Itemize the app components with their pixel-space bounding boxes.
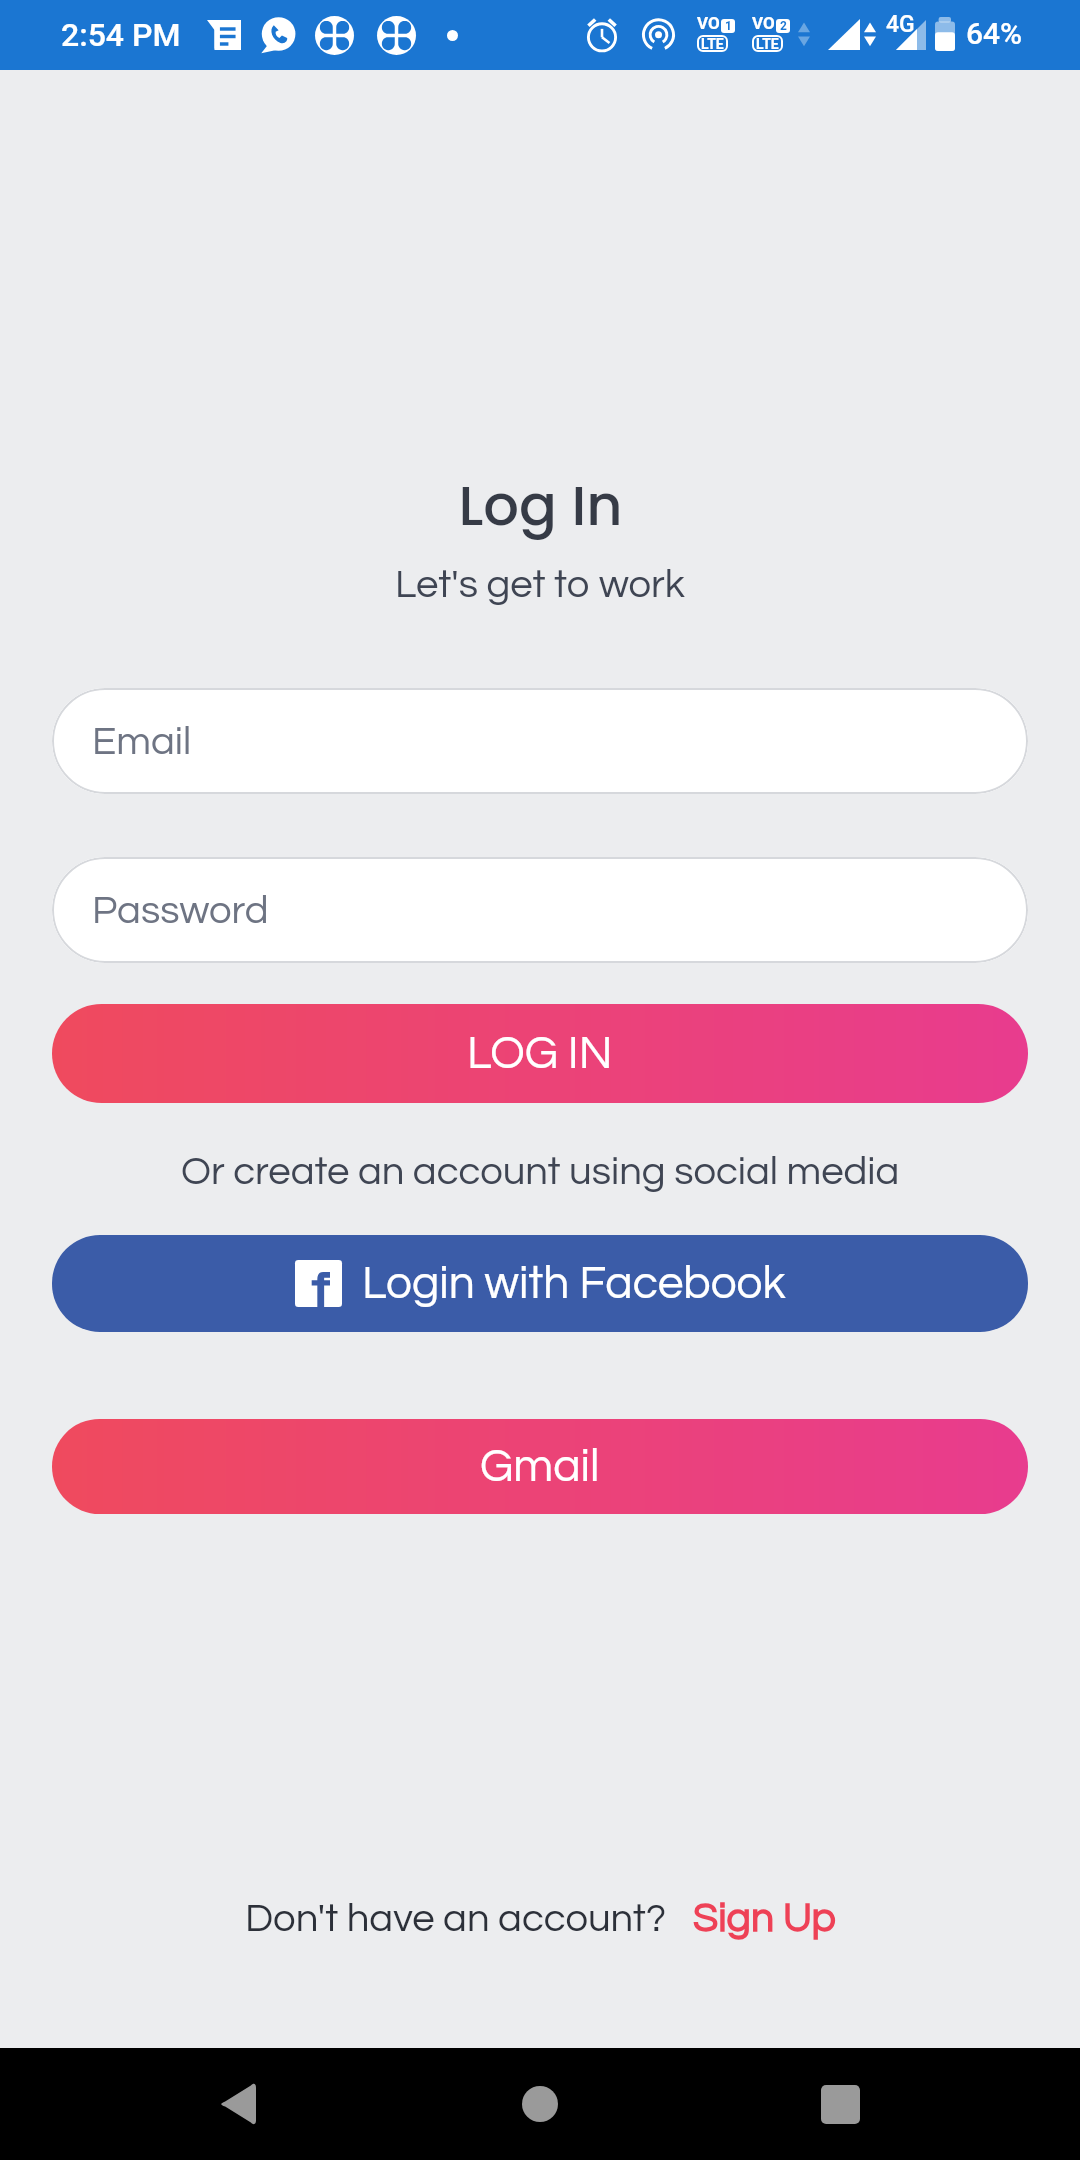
staticText: 2:54 PM [61,16,181,54]
button[interactable]: Home [484,2048,596,2160]
staticText: Password [92,890,269,931]
button[interactable]: Password [52,857,1028,963]
staticText: 64% [966,16,1023,51]
staticText: VO [697,13,720,33]
staticText: Gmail [480,1443,600,1490]
button[interactable]: Login with Facebook [52,1235,1028,1332]
staticText: Login with Facebook [362,1260,786,1307]
staticText: Don't have an account? [245,1898,667,1939]
staticText: Log In [458,466,623,544]
staticText: Sign Up [693,1897,836,1939]
staticText: 4G [886,11,915,38]
staticText: Let's get to work [395,564,685,605]
staticText: LTE [756,36,779,52]
button[interactable]: Recent apps [784,2048,896,2160]
staticText: LOG IN [467,1030,613,1077]
button[interactable]: Email [52,688,1028,794]
button[interactable]: LOG IN [52,1004,1028,1103]
staticText: 1 [725,19,732,33]
staticText: VO [752,13,775,33]
button[interactable]: Sign Up [693,1897,836,1939]
staticText: Email [92,721,192,762]
button[interactable]: Gmail [52,1419,1028,1514]
staticText: Or create an account using social media [181,1151,900,1192]
staticText: LTE [701,36,724,52]
staticText: 2 [780,19,787,33]
button[interactable]: Back [182,2048,294,2160]
